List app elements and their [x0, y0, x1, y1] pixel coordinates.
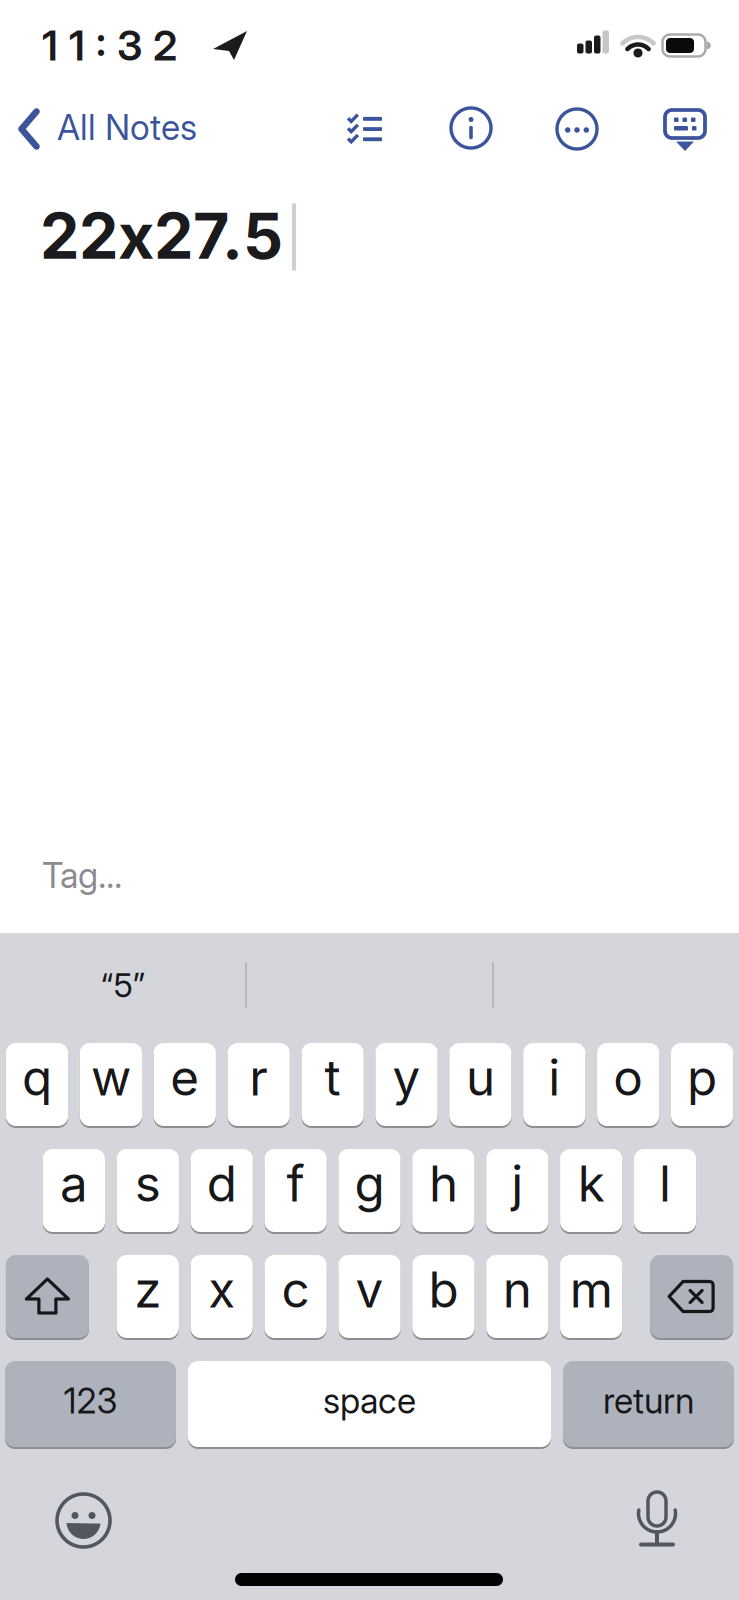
staticText: 27.5	[154, 199, 283, 273]
button[interactable]: d	[191, 1148, 253, 1233]
button[interactable]: c	[264, 1254, 327, 1339]
button[interactable]: n	[486, 1254, 548, 1339]
button[interactable]: All Notes	[18, 109, 298, 151]
staticText: z	[134, 1260, 161, 1319]
staticText: f	[287, 1154, 305, 1213]
staticText: return	[603, 1381, 694, 1421]
button[interactable]: b	[412, 1254, 474, 1339]
staticText: space	[323, 1381, 416, 1421]
staticText: c	[282, 1260, 310, 1319]
staticText: m	[570, 1260, 613, 1319]
button[interactable]: space	[188, 1360, 551, 1448]
staticText: r	[249, 1048, 268, 1107]
button[interactable]: o	[597, 1042, 659, 1127]
staticText: v	[355, 1260, 383, 1319]
staticText: j	[511, 1154, 523, 1213]
button[interactable]: Tag...	[36, 855, 128, 896]
button[interactable]: Checklist	[347, 114, 383, 146]
button[interactable]: Emoji	[55, 1492, 112, 1549]
staticText: Tag...	[42, 855, 122, 896]
button[interactable]: f	[264, 1148, 327, 1233]
button[interactable]: v	[338, 1254, 401, 1339]
button[interactable]: y	[375, 1042, 438, 1127]
button[interactable]: x	[191, 1254, 253, 1339]
staticText: s	[135, 1154, 161, 1213]
staticText: l	[659, 1154, 671, 1213]
button[interactable]: u	[449, 1042, 511, 1127]
staticText: i	[548, 1048, 560, 1107]
staticText: k	[578, 1154, 605, 1213]
button[interactable]: Dismiss keyboard	[665, 110, 705, 152]
button[interactable]: i	[523, 1042, 585, 1127]
button[interactable]: “5”	[33, 955, 213, 1015]
staticText: o	[613, 1048, 643, 1107]
button[interactable]: More	[557, 109, 597, 149]
staticText: x	[208, 1260, 235, 1319]
button[interactable]: e	[154, 1042, 216, 1127]
staticText: b	[428, 1260, 458, 1319]
staticText: 11:32	[42, 21, 177, 70]
button[interactable]: m	[560, 1254, 622, 1339]
button[interactable]: r	[228, 1042, 290, 1127]
staticText: x	[118, 199, 154, 273]
button[interactable]: l	[634, 1148, 696, 1233]
button[interactable]: k	[560, 1148, 622, 1233]
staticText: a	[60, 1154, 88, 1213]
button[interactable]: Dictate	[637, 1486, 677, 1548]
staticText: q	[22, 1048, 52, 1107]
staticText: e	[170, 1048, 199, 1107]
button[interactable]: Info	[451, 108, 491, 148]
staticText: 22	[40, 199, 118, 273]
button[interactable]: j	[486, 1148, 548, 1233]
staticText: All Notes	[57, 107, 197, 148]
staticText: p	[687, 1048, 717, 1107]
staticText: “5”	[100, 965, 145, 1005]
staticText: t	[325, 1048, 341, 1107]
button[interactable]: h	[412, 1148, 474, 1233]
button[interactable]: p	[671, 1042, 733, 1127]
button[interactable]: 123	[5, 1360, 176, 1448]
staticText: y	[392, 1048, 420, 1107]
button[interactable]: w	[80, 1042, 142, 1127]
button[interactable]: q	[6, 1042, 68, 1127]
button[interactable]: z	[117, 1254, 179, 1339]
button[interactable]: s	[117, 1148, 179, 1233]
button[interactable]: a	[43, 1148, 105, 1233]
button[interactable]: g	[338, 1148, 401, 1233]
button[interactable]: Delete	[650, 1254, 733, 1339]
staticText: 123	[63, 1381, 117, 1421]
staticText: n	[503, 1260, 532, 1319]
staticText: g	[354, 1154, 384, 1213]
staticText: h	[429, 1154, 458, 1213]
button[interactable]: Shift	[6, 1254, 89, 1339]
button[interactable]: t	[301, 1042, 364, 1127]
button[interactable]: return	[563, 1360, 734, 1448]
staticText: w	[91, 1048, 131, 1107]
staticText: d	[207, 1154, 237, 1213]
staticText: u	[466, 1048, 495, 1107]
